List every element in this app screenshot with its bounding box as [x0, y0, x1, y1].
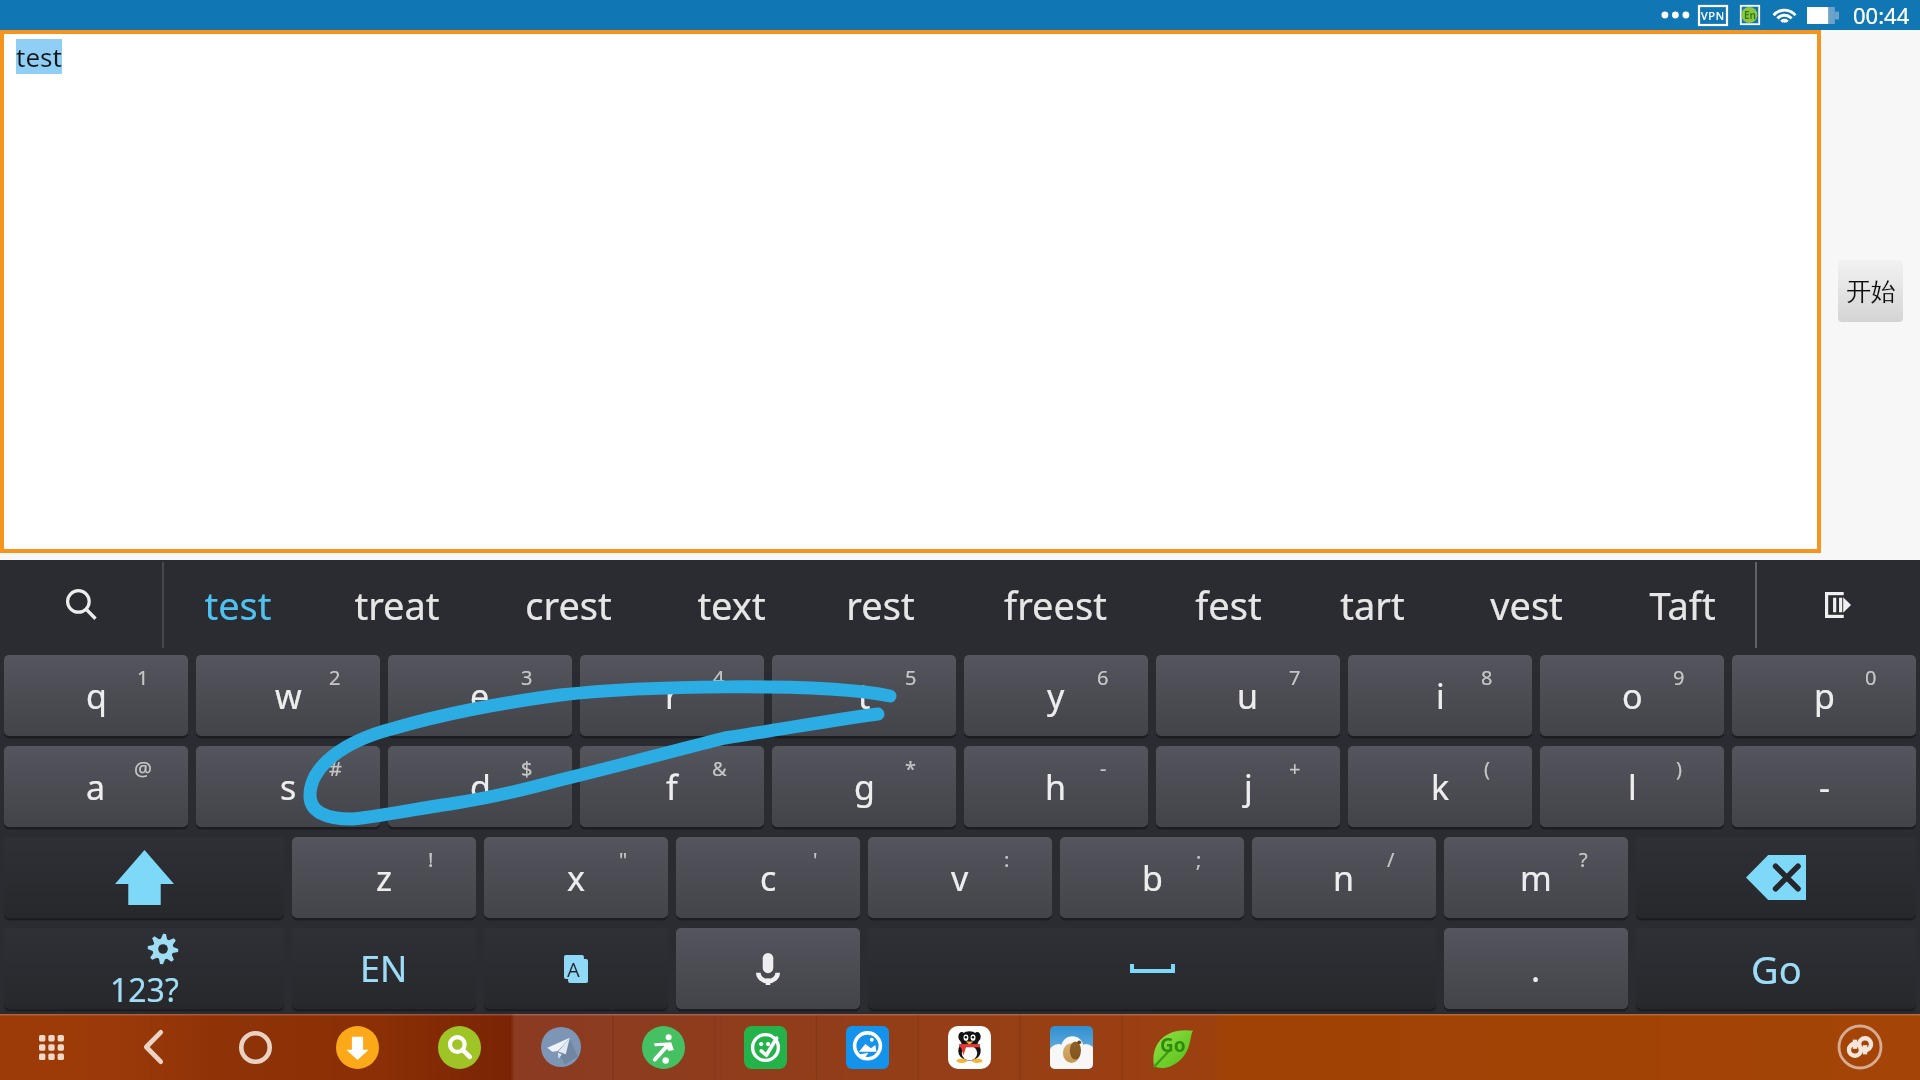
staticText: g: [854, 764, 875, 810]
button[interactable]: 开始: [1838, 260, 1903, 322]
staticText: e: [470, 673, 490, 719]
button[interactable]: fest: [1156, 560, 1301, 650]
staticText: 123?: [110, 968, 179, 1009]
staticText: +: [1289, 755, 1301, 782]
button[interactable]: Assistant: [1800, 1014, 1920, 1080]
button[interactable]: QQ: [918, 1014, 1020, 1080]
button[interactable]: treat: [313, 560, 480, 650]
button[interactable]: x: [484, 837, 668, 918]
staticText: :: [1004, 846, 1010, 873]
button[interactable]: d: [388, 746, 572, 827]
staticText: En: [1744, 8, 1757, 22]
button[interactable]: All apps: [0, 1014, 102, 1080]
button[interactable]: j: [1156, 746, 1340, 827]
button[interactable]: f: [580, 746, 764, 827]
staticText: .: [1531, 946, 1541, 992]
staticText: ': [813, 846, 818, 873]
button[interactable]: h: [964, 746, 1148, 827]
staticText: $: [521, 755, 533, 782]
staticText: z: [376, 855, 392, 901]
staticText: VPN: [1701, 8, 1725, 23]
button[interactable]: vest: [1444, 560, 1609, 650]
button[interactable]: Downloads: [306, 1014, 408, 1080]
button[interactable]: Sports: [612, 1014, 714, 1080]
button[interactable]: Shift: [4, 837, 284, 918]
button[interactable]: a: [4, 746, 188, 827]
staticText: o: [1622, 673, 1643, 719]
button[interactable]: Search: [0, 560, 163, 650]
staticText: 8: [1481, 664, 1493, 691]
button[interactable]: More suggestions: [1756, 560, 1920, 650]
button[interactable]: k: [1348, 746, 1532, 827]
staticText: b: [1142, 855, 1163, 901]
button[interactable]: v: [868, 837, 1052, 918]
staticText: /: [1387, 846, 1395, 873]
button[interactable]: z: [292, 837, 476, 918]
staticText: 6: [1097, 664, 1109, 691]
button[interactable]: Symbols: [4, 928, 284, 1009]
staticText: 1: [137, 664, 149, 691]
staticText: ;: [1196, 846, 1202, 873]
staticText: 4: [713, 664, 725, 691]
staticText: #: [329, 755, 342, 782]
button[interactable]: w: [196, 655, 380, 736]
button[interactable]: o: [1540, 655, 1724, 736]
button[interactable]: n: [1252, 837, 1436, 918]
button[interactable]: test: [163, 560, 313, 650]
button[interactable]: r: [580, 655, 764, 736]
button[interactable]: e: [388, 655, 572, 736]
button[interactable]: Telegram: [510, 1014, 612, 1080]
button[interactable]: Voice input: [676, 928, 860, 1009]
staticText: ): [1676, 755, 1682, 782]
staticText: -: [1100, 755, 1107, 782]
staticText: x: [567, 855, 585, 901]
button[interactable]: y: [964, 655, 1148, 736]
button[interactable]: b: [1060, 837, 1244, 918]
button[interactable]: l: [1540, 746, 1724, 827]
button[interactable]: rest: [806, 560, 955, 650]
button[interactable]: Home: [204, 1014, 306, 1080]
button[interactable]: Change language: [484, 928, 668, 1009]
button[interactable]: -: [1732, 746, 1916, 827]
button[interactable]: Nut: [1020, 1014, 1122, 1080]
button[interactable]: t: [772, 655, 956, 736]
staticText: h: [1045, 764, 1067, 810]
button[interactable]: Delete: [1636, 837, 1916, 918]
button[interactable]: test: [4, 34, 1817, 549]
button[interactable]: u: [1156, 655, 1340, 736]
button[interactable]: g: [772, 746, 956, 827]
button[interactable]: crest: [480, 560, 657, 650]
button[interactable]: i: [1348, 655, 1532, 736]
button[interactable]: m: [1444, 837, 1628, 918]
staticText: 5: [905, 664, 917, 691]
staticText: (: [1484, 755, 1490, 782]
button[interactable]: .: [1444, 928, 1628, 1009]
button[interactable]: text: [657, 560, 806, 650]
button[interactable]: Search: [408, 1014, 510, 1080]
button[interactable]: Taft: [1609, 560, 1756, 650]
staticText: t: [858, 673, 871, 719]
button[interactable]: Gallery: [816, 1014, 918, 1080]
button[interactable]: Space: [868, 928, 1436, 1009]
button[interactable]: q: [4, 655, 188, 736]
button[interactable]: EN: [292, 928, 476, 1009]
button[interactable]: c: [676, 837, 860, 918]
button[interactable]: s: [196, 746, 380, 827]
staticText: u: [1237, 673, 1259, 719]
staticText: tart: [1340, 579, 1405, 631]
button[interactable]: Go: [1122, 1014, 1224, 1080]
button[interactable]: p: [1732, 655, 1916, 736]
staticText: 00:44: [1853, 0, 1910, 30]
button[interactable]: Go: [1636, 928, 1916, 1009]
button[interactable]: freest: [955, 560, 1156, 650]
button[interactable]: Tick: [714, 1014, 816, 1080]
staticText: ": [619, 846, 628, 873]
staticText: test: [204, 579, 272, 631]
staticText: k: [1431, 764, 1450, 810]
staticText: v: [951, 855, 969, 901]
staticText: 9: [1673, 664, 1685, 691]
staticText: crest: [525, 579, 612, 631]
button[interactable]: Back: [102, 1014, 204, 1080]
button[interactable]: tart: [1301, 560, 1444, 650]
staticText: EN: [360, 944, 408, 993]
